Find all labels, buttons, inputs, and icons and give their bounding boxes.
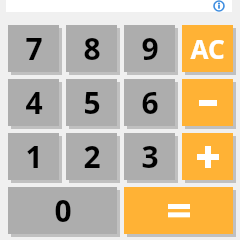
button[interactable]: 4 — [8, 79, 59, 126]
button[interactable]: 9 — [124, 25, 175, 72]
button[interactable]: 2 — [66, 133, 117, 180]
staticText: 2 — [83, 136, 101, 177]
button[interactable]: 7 — [8, 25, 59, 72]
staticText: 9 — [141, 28, 159, 69]
staticText: 0 — [54, 190, 72, 231]
button[interactable]: Info — [6, 0, 232, 12]
staticText: 1 — [25, 136, 43, 177]
button[interactable]: 1 — [8, 133, 59, 180]
staticText: 4 — [25, 82, 43, 123]
staticText: 6 — [141, 82, 159, 123]
staticText: 3 — [141, 136, 159, 177]
staticText: 8 — [83, 28, 101, 69]
staticText: 5 — [83, 82, 101, 123]
button[interactable]: 6 — [124, 79, 175, 126]
button[interactable]: Info — [212, 0, 226, 12]
button[interactable]: Equals — [124, 187, 233, 234]
button[interactable]: 5 — [66, 79, 117, 126]
button[interactable]: Plus — [182, 133, 233, 180]
button[interactable]: AC — [182, 25, 233, 72]
button[interactable]: 0 — [8, 187, 117, 234]
button[interactable]: 3 — [124, 133, 175, 180]
button[interactable]: 8 — [66, 25, 117, 72]
button[interactable]: Minus — [182, 79, 233, 126]
staticText: AC — [190, 31, 225, 66]
staticText: 7 — [25, 28, 43, 69]
